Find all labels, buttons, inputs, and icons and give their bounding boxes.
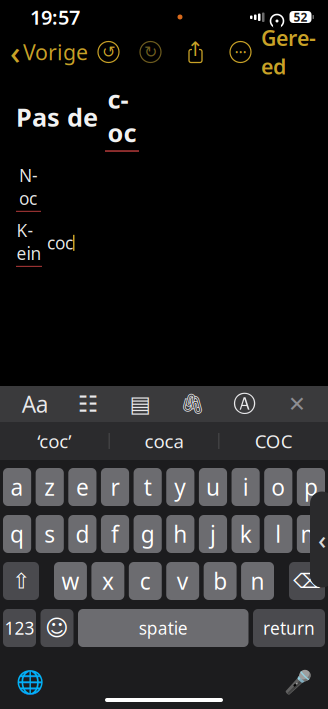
staticText: 52	[293, 9, 307, 25]
button[interactable]: w	[54, 562, 87, 600]
staticText: ‘coc’	[37, 429, 71, 453]
button[interactable]: x	[91, 562, 124, 600]
button[interactable]: return	[253, 609, 325, 647]
button[interactable]: i	[232, 468, 260, 506]
button[interactable]: n	[241, 562, 274, 600]
button[interactable]: Attach	[175, 387, 209, 421]
button[interactable]: j	[199, 515, 227, 553]
button[interactable]: Text format	[18, 387, 52, 421]
staticText: m	[300, 519, 321, 549]
staticText: o	[271, 472, 285, 502]
button[interactable]: d	[68, 515, 96, 553]
button[interactable]: Change keyboard	[12, 664, 48, 700]
button[interactable]: Gereed	[261, 18, 328, 86]
staticText: w	[61, 566, 79, 596]
button[interactable]: z	[36, 468, 64, 506]
staticText: h	[173, 519, 187, 549]
staticText: spatie	[139, 616, 188, 639]
button[interactable]: f	[101, 515, 129, 553]
staticText: y	[174, 472, 186, 502]
staticText: k	[240, 519, 252, 549]
button[interactable]: 123	[3, 609, 36, 647]
button[interactable]: q	[3, 515, 31, 553]
staticText: 🖇	[180, 393, 205, 415]
staticText: ✕	[288, 392, 306, 416]
staticText: coca	[144, 429, 183, 453]
button[interactable]: COC	[219, 422, 328, 460]
button[interactable]: e	[68, 468, 96, 506]
staticText: d	[75, 519, 89, 549]
button[interactable]: u	[199, 468, 227, 506]
staticText: ⌫	[293, 570, 321, 592]
staticText: f	[111, 519, 119, 549]
button[interactable]: Dictate	[280, 664, 316, 700]
staticText: ☷	[78, 391, 98, 417]
staticText: coc	[42, 231, 73, 254]
button[interactable]: s	[36, 515, 64, 553]
button[interactable]: Undo	[96, 40, 120, 64]
button[interactable]: ‹	[0, 25, 88, 79]
staticText: v	[177, 566, 189, 596]
button[interactable]: a	[3, 468, 31, 506]
button[interactable]: Table	[123, 387, 157, 421]
staticText: 🎤	[284, 669, 312, 695]
staticText: u	[206, 472, 220, 502]
staticText: 19:57	[30, 4, 80, 30]
staticText: q	[10, 519, 24, 549]
staticText: Pas de	[16, 100, 105, 134]
button[interactable]: Shift	[3, 562, 39, 600]
staticText: c	[140, 566, 151, 596]
staticText: ‹	[10, 31, 20, 73]
staticText: ☺	[45, 615, 69, 641]
staticText: ↑	[187, 38, 204, 60]
staticText: t	[144, 472, 152, 502]
staticText: j	[210, 519, 216, 549]
staticText: Ⓐ	[233, 390, 256, 418]
staticText: Vorige	[23, 38, 88, 66]
staticText: n	[250, 566, 264, 596]
button[interactable]: coca	[110, 422, 218, 460]
button[interactable]: spatie	[78, 609, 248, 647]
button[interactable]: b	[204, 562, 237, 600]
button[interactable]: ‘coc’	[0, 422, 109, 460]
button[interactable]: y	[166, 468, 194, 506]
staticText: ▤	[129, 391, 150, 417]
staticText: p	[304, 472, 318, 502]
staticText: i	[243, 472, 249, 502]
button[interactable]: Share	[184, 40, 206, 64]
button[interactable]: o	[264, 468, 292, 506]
button[interactable]: h	[166, 515, 194, 553]
staticText: return	[263, 616, 315, 639]
staticText: coc	[107, 82, 136, 149]
button[interactable]: More	[228, 40, 252, 64]
staticText: l	[275, 519, 281, 549]
button[interactable]: p	[297, 468, 325, 506]
staticText: r	[110, 472, 119, 502]
button[interactable]: k	[232, 515, 260, 553]
staticText: s	[44, 519, 55, 549]
button[interactable]: Emoji	[40, 609, 73, 647]
button[interactable]: Checklist	[71, 387, 105, 421]
staticText: 123	[4, 616, 34, 639]
button[interactable]: c	[129, 562, 162, 600]
button[interactable]: Close	[280, 387, 314, 421]
button[interactable]: m	[297, 515, 325, 553]
button[interactable]: Back	[310, 491, 328, 587]
staticText: Gereed	[261, 24, 316, 80]
staticText: ↺	[102, 43, 115, 61]
button[interactable]: t	[134, 468, 162, 506]
staticText: z	[44, 472, 55, 502]
staticText: Noc	[19, 164, 38, 210]
button[interactable]: g	[134, 515, 162, 553]
button[interactable]: r	[101, 468, 129, 506]
button[interactable]: v	[166, 562, 199, 600]
staticText: Aa	[22, 389, 49, 419]
button[interactable]: Redo	[138, 40, 162, 64]
staticText: ‹	[318, 523, 326, 556]
staticText: ⇧	[12, 569, 30, 593]
staticText: g	[141, 519, 155, 549]
button[interactable]: Markup	[228, 387, 262, 421]
staticText: 🌐	[16, 669, 44, 695]
button[interactable]: Delete	[289, 562, 325, 600]
button[interactable]: l	[264, 515, 292, 553]
